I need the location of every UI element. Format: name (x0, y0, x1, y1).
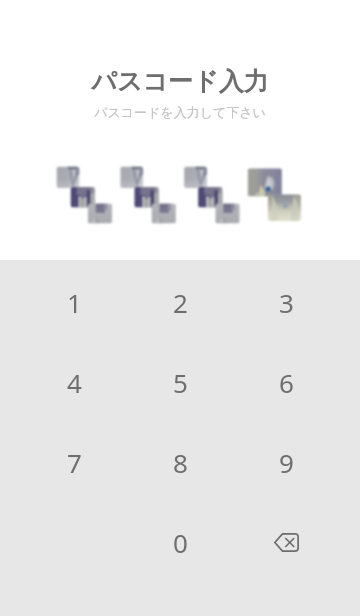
staticText: 8 (173, 445, 188, 480)
staticText: 9 (279, 445, 294, 480)
staticText: 6 (279, 365, 294, 400)
staticText: 3 (279, 285, 294, 320)
other: Delete (274, 533, 299, 552)
staticText: 7 (67, 445, 82, 480)
button[interactable]: 7 (21, 422, 127, 502)
staticText: 0 (173, 525, 188, 560)
button[interactable]: 4 (21, 342, 127, 422)
staticText: 2 (173, 285, 188, 320)
staticText: パスコード入力 (0, 66, 360, 97)
button[interactable]: 6 (233, 342, 339, 422)
button[interactable]: 8 (127, 422, 233, 502)
button[interactable]: 5 (127, 342, 233, 422)
button[interactable]: 2 (127, 262, 233, 342)
staticText: パスコードを入力して下さい (0, 104, 360, 120)
staticText: 4 (67, 365, 82, 400)
button[interactable]: 0 (127, 502, 233, 582)
button[interactable]: 3 (233, 262, 339, 342)
button[interactable]: 9 (233, 422, 339, 502)
button[interactable]: Delete (233, 502, 339, 582)
staticText: 5 (173, 365, 188, 400)
button[interactable]: 1 (21, 262, 127, 342)
staticText: 1 (67, 285, 82, 320)
